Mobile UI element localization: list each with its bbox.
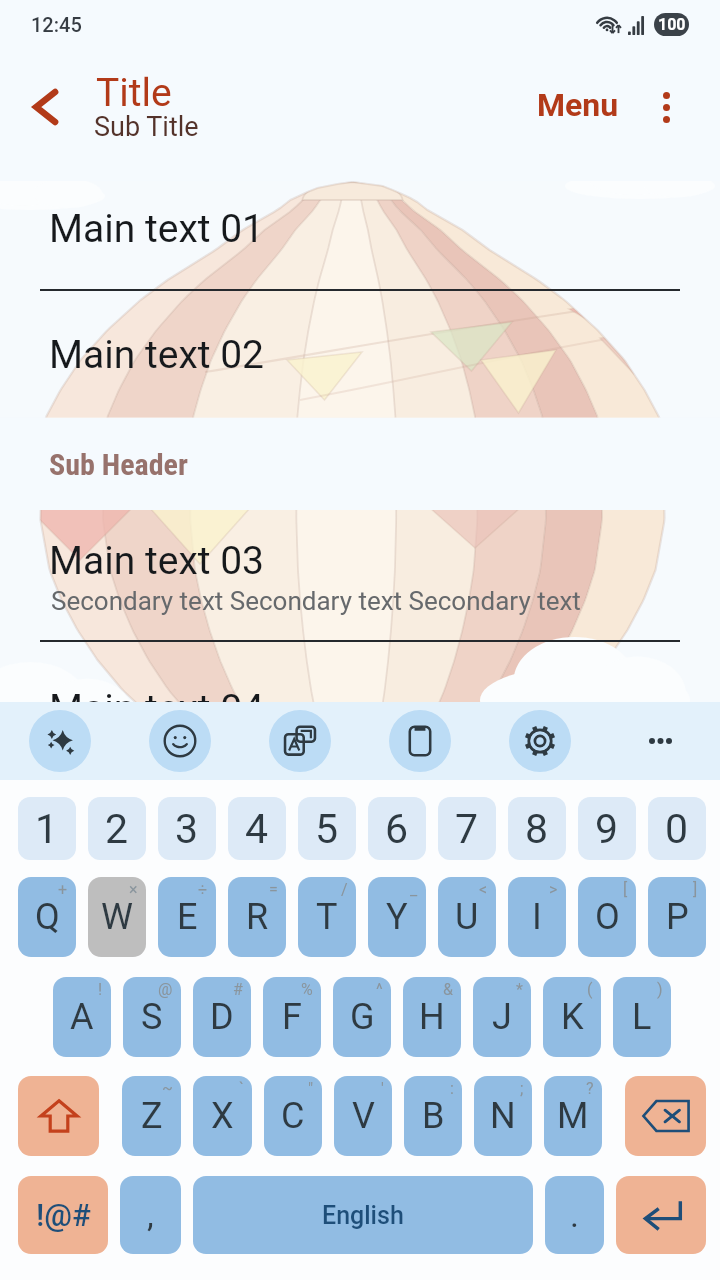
button[interactable]: [ [578, 877, 636, 957]
button[interactable]: 4 [228, 797, 286, 860]
button[interactable]: 7 [438, 797, 496, 860]
button[interactable]: Settings [480, 702, 600, 780]
button[interactable]: English [193, 1176, 533, 1254]
button[interactable]: . [545, 1176, 604, 1254]
staticText: < [479, 880, 488, 899]
staticText: H [419, 996, 445, 1038]
staticText: × [129, 880, 138, 899]
staticText: 12:45 [31, 13, 82, 36]
button[interactable]: " [264, 1076, 322, 1156]
button[interactable]: 5 [298, 797, 356, 860]
staticText: ` [239, 1079, 244, 1098]
staticText: 1 [35, 805, 59, 853]
button[interactable]: Main text 02 [0, 291, 720, 400]
staticText: 100 [658, 15, 686, 34]
button[interactable]: % [263, 977, 321, 1057]
button[interactable]: & [403, 977, 461, 1057]
staticText: M [557, 1095, 589, 1137]
staticText: Z [141, 1095, 163, 1137]
button[interactable]: ; [474, 1076, 532, 1156]
button[interactable]: ÷ [158, 877, 216, 957]
button[interactable]: !@# [18, 1176, 108, 1254]
button[interactable]: ^ [333, 977, 391, 1057]
staticText: + [58, 880, 68, 899]
button[interactable]: 0 [648, 797, 706, 860]
button[interactable]: Main text 04 [0, 642, 720, 702]
button[interactable]: @ [123, 977, 181, 1057]
staticText: _ [410, 880, 418, 899]
staticText: ^ [376, 980, 383, 999]
staticText: ! [98, 980, 103, 999]
button[interactable]: More options [636, 77, 696, 137]
button[interactable]: AI suggestions [0, 702, 120, 780]
staticText: : [450, 1079, 454, 1098]
staticText: ' [381, 1079, 384, 1098]
staticText: Sub Header [49, 447, 188, 482]
button[interactable]: Emoji [120, 702, 240, 780]
button[interactable]: * [473, 977, 531, 1057]
staticText: W [101, 896, 133, 938]
button[interactable]: _ [368, 877, 426, 957]
staticText: G [350, 996, 375, 1038]
button[interactable]: ] [648, 877, 706, 957]
button[interactable]: Sub Header [0, 418, 720, 510]
button[interactable]: > [508, 877, 566, 957]
staticText: Title [96, 70, 172, 116]
staticText: B [422, 1095, 445, 1137]
button[interactable]: < [438, 877, 496, 957]
staticText: C [281, 1095, 305, 1137]
staticText: , [147, 1195, 154, 1235]
button[interactable]: ? [544, 1076, 602, 1156]
staticText: > [549, 880, 558, 899]
button[interactable]: 3 [158, 797, 216, 860]
staticText: 3 [175, 805, 199, 853]
button[interactable]: × [88, 877, 146, 957]
staticText: T [316, 896, 338, 938]
button[interactable]: # [193, 977, 251, 1057]
button[interactable]: 1 [18, 797, 76, 860]
button[interactable]: 9 [578, 797, 636, 860]
button[interactable]: ` [193, 1076, 252, 1156]
staticText: 9 [595, 805, 619, 853]
button[interactable]: Translate [240, 702, 360, 780]
button[interactable]: ~ [122, 1076, 181, 1156]
button[interactable]: ) [613, 977, 671, 1057]
button[interactable]: 6 [368, 797, 426, 860]
staticText: 7 [455, 805, 479, 853]
button[interactable]: / [298, 877, 356, 957]
button[interactable]: : [404, 1076, 462, 1156]
button[interactable]: Clipboard [360, 702, 480, 780]
staticText: S [141, 996, 163, 1038]
staticText: % [301, 980, 313, 999]
button[interactable]: + [18, 877, 76, 957]
staticText: Y [386, 896, 408, 938]
staticText: Main text 03 [49, 538, 265, 584]
button[interactable]: ! [53, 977, 111, 1057]
button[interactable]: Menu [528, 81, 628, 129]
staticText: 5 [315, 805, 339, 853]
button[interactable]: Shift [18, 1076, 99, 1156]
button[interactable]: , [120, 1176, 181, 1254]
staticText: / [341, 880, 348, 899]
button[interactable]: 8 [508, 797, 566, 860]
button[interactable]: Enter [616, 1176, 706, 1254]
button[interactable]: = [228, 877, 286, 957]
button[interactable]: Main text 03 [0, 510, 720, 641]
button[interactable]: ' [334, 1076, 392, 1156]
button[interactable]: Main text 01 [0, 181, 720, 290]
staticText: A [70, 996, 94, 1038]
staticText: ) [657, 980, 663, 999]
staticText: 0 [665, 805, 689, 853]
button[interactable]: Back [15, 77, 75, 137]
button[interactable]: 2 [88, 797, 146, 860]
staticText: ( [587, 980, 593, 999]
button[interactable]: More [600, 702, 720, 780]
staticText: English [322, 1201, 404, 1230]
staticText: ] [693, 880, 698, 899]
staticText: N [490, 1095, 516, 1137]
staticText: 8 [525, 805, 549, 853]
button[interactable]: ( [543, 977, 601, 1057]
staticText: X [211, 1095, 234, 1137]
button[interactable]: Backspace [625, 1076, 706, 1156]
staticText: " [308, 1079, 314, 1098]
